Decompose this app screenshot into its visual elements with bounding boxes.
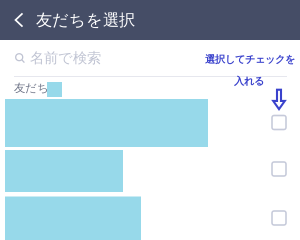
button[interactable] [0, 196, 300, 240]
staticText: 選択してチェックを [205, 53, 295, 66]
staticText: 入れる [234, 75, 264, 88]
button[interactable]: Back [0, 0, 36, 39]
button[interactable]: 名前で検索 [0, 40, 300, 76]
staticText: 名前で検索 [30, 49, 101, 67]
staticText: 友だち [14, 81, 49, 95]
button[interactable] [0, 99, 300, 149]
button[interactable] [0, 149, 300, 196]
staticText: 友だちを選択 [36, 10, 135, 30]
